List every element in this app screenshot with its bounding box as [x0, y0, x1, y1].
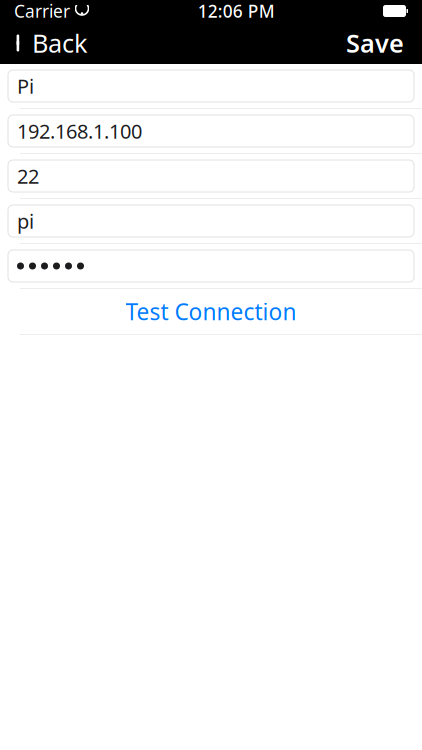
button[interactable]: Pi	[0, 64, 422, 108]
button[interactable]	[0, 244, 422, 288]
staticText: Pi	[17, 73, 34, 99]
button[interactable]: 22	[0, 154, 422, 198]
button[interactable]: 192.168.1.100	[0, 109, 422, 153]
button[interactable]: Save	[336, 22, 422, 64]
staticText: Test Connection	[125, 296, 296, 326]
button[interactable]: Test Connection	[0, 289, 422, 334]
staticText: 12:06 PM	[198, 0, 275, 22]
button[interactable]: Back	[0, 22, 98, 64]
staticText: Carrier	[14, 0, 70, 22]
staticText: 192.168.1.100	[17, 118, 142, 144]
staticText: 22	[17, 163, 39, 189]
staticText: Save	[346, 26, 404, 60]
staticText: pi	[17, 208, 34, 234]
staticText: Back	[32, 26, 88, 60]
button[interactable]: pi	[0, 199, 422, 243]
